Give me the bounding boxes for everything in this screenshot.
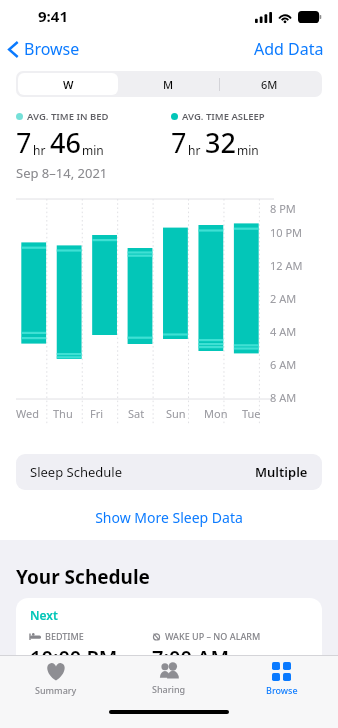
staticText: M	[163, 77, 174, 92]
staticText: Sleep Schedule	[30, 463, 122, 481]
staticText: 46	[50, 124, 81, 161]
staticText: 9:41	[38, 6, 68, 26]
staticText: 6 AM	[270, 357, 297, 372]
button[interactable]: 6M	[219, 73, 320, 95]
staticText: Browse	[24, 38, 80, 60]
staticText: Sharing	[152, 683, 186, 695]
button[interactable]: Add Data	[240, 34, 338, 64]
button[interactable]: Browse	[0, 34, 88, 64]
staticText: WAKE UP – NO ALARM	[165, 630, 261, 642]
button[interactable]: Browse	[225, 656, 338, 704]
staticText: BEDTIME	[45, 630, 84, 642]
staticText: 7	[16, 124, 32, 161]
staticText: Wed	[16, 406, 39, 421]
staticText: 8 AM	[270, 390, 297, 405]
staticText: 2 AM	[270, 291, 297, 306]
staticText: min	[82, 142, 104, 158]
staticText: 12 AM	[270, 258, 303, 273]
staticText: 32	[205, 124, 236, 161]
staticText: Tue	[242, 406, 261, 421]
staticText: AVG. TIME ASLEEP	[182, 110, 265, 123]
staticText: Add Data	[254, 38, 324, 60]
staticText: min	[237, 142, 259, 158]
staticText: 7	[171, 124, 187, 161]
staticText: Multiple	[255, 463, 308, 481]
staticText: Show More Sleep Data	[95, 508, 243, 527]
staticText: hr	[188, 142, 201, 158]
staticText: Sat	[128, 406, 145, 421]
button[interactable]: W	[18, 73, 118, 95]
staticText: hr	[33, 142, 46, 158]
staticText: Browse	[266, 684, 298, 696]
staticText: Sep 8–14, 2021	[16, 164, 108, 182]
button[interactable]: Show More Sleep Data	[0, 504, 338, 531]
button[interactable]: Summary	[0, 656, 112, 704]
staticText: 8 PM	[270, 201, 296, 216]
staticText: 7:00 AM	[152, 644, 230, 671]
staticText: Your Schedule	[16, 564, 150, 590]
staticText: 10 PM	[270, 225, 303, 240]
button[interactable]: Sleep Schedule	[16, 454, 322, 490]
staticText: Summary	[35, 684, 77, 696]
staticText: Thu	[53, 406, 73, 421]
button[interactable]: M	[118, 73, 219, 95]
staticText: Fri	[90, 406, 104, 421]
staticText: Sun	[166, 406, 186, 421]
button[interactable]: Next	[16, 598, 322, 678]
staticText: Mon	[204, 406, 228, 421]
staticText: AVG. TIME IN BED	[27, 110, 109, 123]
button[interactable]: Sharing	[112, 656, 225, 704]
staticText: Next	[30, 607, 58, 623]
staticText: W	[63, 77, 74, 92]
staticText: 4 AM	[270, 324, 297, 339]
staticText: 10:00 PM	[30, 644, 152, 671]
staticText: 6M	[261, 77, 278, 92]
